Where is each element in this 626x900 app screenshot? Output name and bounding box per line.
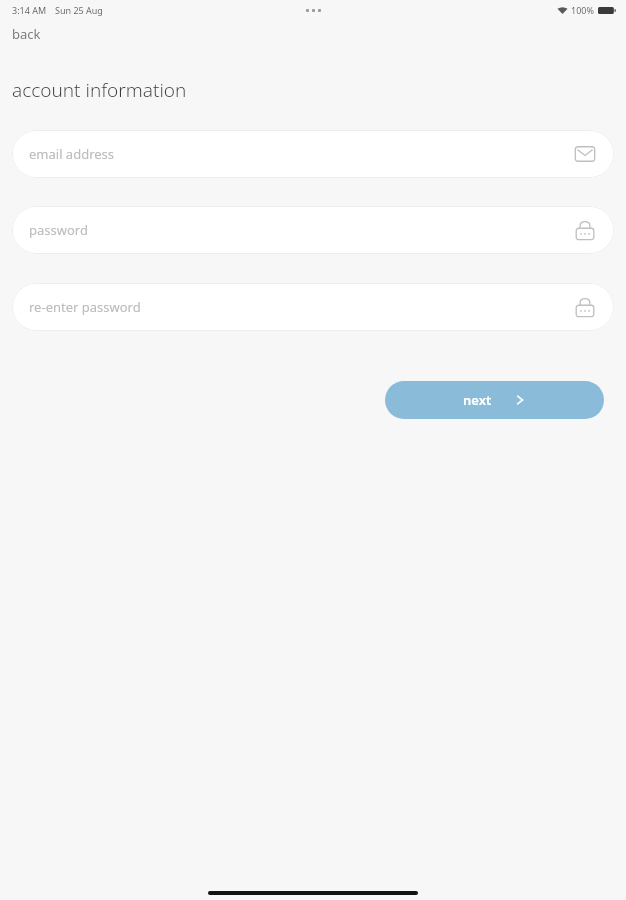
staticText: email address xyxy=(29,145,115,163)
staticText: 100% xyxy=(571,4,594,16)
staticText: 3:14 AM xyxy=(12,4,47,16)
button[interactable]: next xyxy=(385,381,604,419)
staticText: password xyxy=(29,221,88,239)
button[interactable]: Re-enter password xyxy=(12,283,614,331)
staticText: Sun 25 Aug xyxy=(55,4,103,16)
staticText: account information xyxy=(12,77,187,103)
button[interactable]: back xyxy=(12,23,41,45)
staticText: back xyxy=(12,25,41,43)
button[interactable]: Email address xyxy=(12,130,614,178)
button[interactable]: Password xyxy=(12,206,614,254)
staticText: re-enter password xyxy=(29,298,141,316)
staticText: next xyxy=(463,391,492,409)
